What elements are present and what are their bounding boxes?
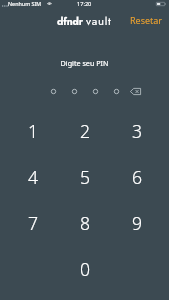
staticText: Digite seu PIN [0, 58, 169, 68]
button[interactable] [85, 86, 106, 97]
staticText: 9 [132, 211, 143, 235]
staticText: dfndr [57, 14, 83, 29]
staticText: 8 [80, 211, 91, 235]
button[interactable]: 1 [7, 108, 59, 154]
button[interactable]: Resetar [125, 11, 168, 29]
staticText: 6 [132, 165, 143, 189]
staticText: Nenhum SIM [8, 0, 42, 7]
button[interactable]: 6 [111, 154, 163, 200]
button[interactable]: 3 [111, 108, 163, 154]
button[interactable]: 2 [59, 108, 111, 154]
button[interactable]: 0 [59, 246, 111, 292]
staticText: 0 [80, 257, 91, 281]
button[interactable]: 9 [111, 200, 163, 246]
staticText: 4 [28, 165, 39, 189]
button[interactable] [106, 86, 127, 97]
staticText: 5 [80, 165, 91, 189]
staticText: 7 [28, 211, 39, 235]
staticText: vault [86, 13, 112, 29]
button[interactable] [43, 86, 64, 97]
button[interactable]: 7 [7, 200, 59, 246]
button[interactable]: 5 [59, 154, 111, 200]
staticText: 1 [28, 119, 39, 143]
staticText: Resetar [130, 14, 163, 26]
button[interactable]: Backspace [126, 86, 145, 97]
staticText: 2 [80, 119, 91, 143]
button[interactable]: 8 [59, 200, 111, 246]
button[interactable] [64, 86, 85, 97]
button[interactable]: 4 [7, 154, 59, 200]
staticText: 17:20 [77, 0, 92, 8]
staticText: 3 [132, 119, 143, 143]
